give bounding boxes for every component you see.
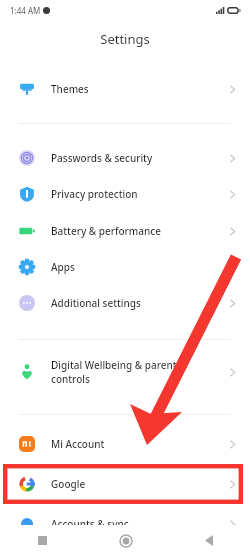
button[interactable]: Privacy protection (0, 176, 250, 212)
button[interactable]: Battery & performance (0, 213, 250, 249)
button[interactable]: Additional settings (0, 285, 250, 321)
button[interactable]: Apps (0, 249, 250, 285)
button[interactable]: Accounts & sync (0, 506, 250, 542)
button[interactable]: Google (0, 466, 250, 502)
staticText: Passwords & security (51, 151, 153, 165)
staticText: Battery & performance (51, 224, 161, 238)
button[interactable]: Home (84, 525, 167, 556)
button[interactable]: Recent apps (0, 525, 84, 556)
staticText: 1:44 AM (10, 5, 41, 16)
staticText: Digital Wellbeing & parental (51, 358, 185, 372)
staticText: Themes (51, 82, 89, 96)
button[interactable]: Mi Account (0, 426, 250, 462)
button[interactable]: Themes (0, 71, 250, 107)
button[interactable]: Passwords & security (0, 140, 250, 176)
staticText: Apps (51, 260, 75, 274)
staticText: Accounts & sync (51, 517, 129, 531)
staticText: Additional settings (51, 296, 141, 310)
staticText: Settings (0, 30, 250, 48)
staticText: Privacy protection (51, 187, 138, 201)
staticText: Google (51, 477, 86, 491)
button[interactable]: Back (167, 525, 250, 556)
staticText: Mi Account (51, 437, 105, 451)
staticText: controls (51, 372, 90, 386)
button[interactable]: Digital Wellbeing & parental (0, 354, 250, 390)
